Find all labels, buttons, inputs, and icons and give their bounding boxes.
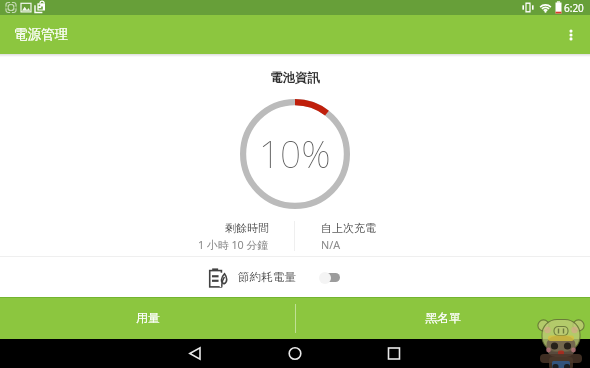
staticText: 用量 — [136, 310, 160, 325]
staticText: 剩餘時間 — [225, 221, 269, 235]
button[interactable]: 用量 — [0, 297, 295, 339]
staticText: 10% — [259, 128, 331, 178]
staticText: 6:20 — [564, 1, 584, 15]
button[interactable]: 黑名單 — [295, 297, 590, 339]
staticText: 自上次充電 — [321, 221, 376, 235]
staticText: 1 小時 10 分鐘 — [198, 237, 269, 251]
staticText: 節約耗電量 — [238, 270, 296, 285]
button[interactable]: 節約耗電量 — [209, 257, 340, 297]
staticText: N/A — [321, 237, 341, 251]
button[interactable]: Back — [0, 339, 197, 368]
button[interactable]: Home — [197, 339, 393, 368]
staticText: 黑名單 — [425, 310, 461, 325]
staticText: 電池資訊 — [0, 70, 590, 86]
button[interactable]: More options — [551, 15, 590, 54]
button[interactable]: Recent apps — [393, 339, 590, 368]
staticText: 電源管理 — [14, 26, 68, 43]
